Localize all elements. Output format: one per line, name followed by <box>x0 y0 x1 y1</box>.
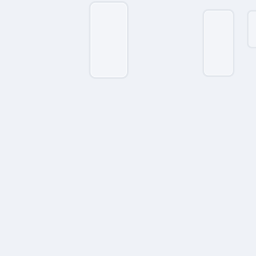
button[interactable]: Large device preview <box>90 2 128 78</box>
button[interactable]: Medium device preview <box>203 10 234 76</box>
button[interactable]: Small device preview <box>248 11 256 47</box>
